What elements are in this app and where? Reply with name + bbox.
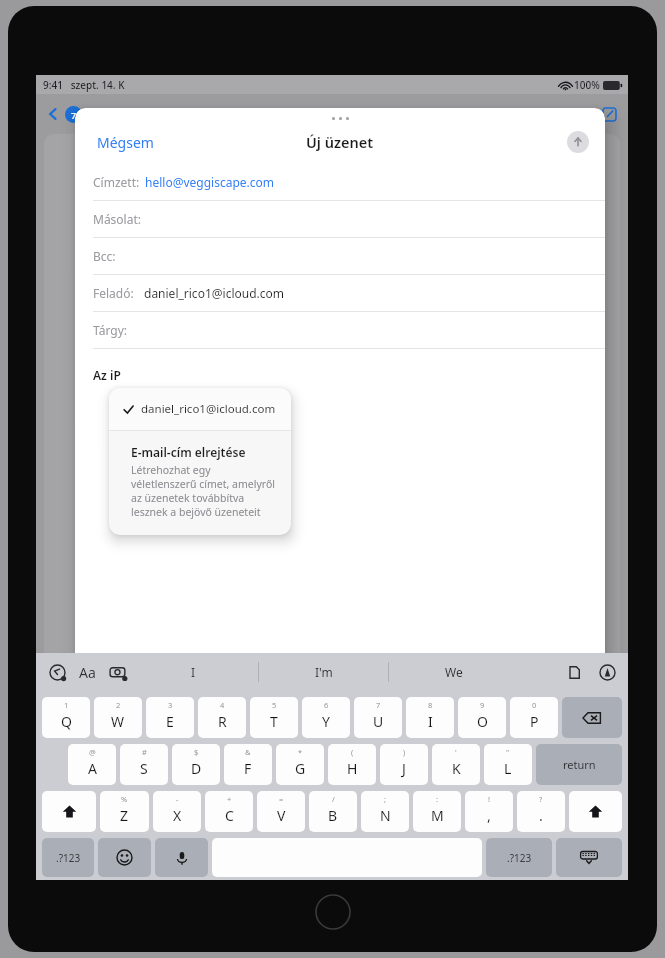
button[interactable]: = [257,791,305,832]
button[interactable]: ( [328,744,376,785]
staticText: @ [89,747,96,757]
button[interactable]: Kamera [107,661,129,683]
staticText: daniel_rico1@icloud.com [144,285,285,301]
button[interactable]: 2 [94,697,142,738]
button[interactable]: % [100,791,149,832]
staticText: Q [61,712,72,731]
button[interactable]: daniel_rico1@icloud.com [109,388,291,430]
staticText: + [227,794,232,804]
staticText: Aa [79,663,96,682]
staticText: Másolat: [93,211,142,227]
staticText: ' [455,747,457,757]
staticText: H [347,759,358,778]
button[interactable]: $ [172,744,220,785]
button[interactable]: Visszavonás [46,661,68,683]
staticText: I'm [315,664,333,680]
button[interactable]: 6 [302,697,350,738]
button[interactable]: Aa [79,663,96,682]
staticText: 9:41 szept. 14. K [43,78,125,92]
button[interactable]: 7 [354,697,402,738]
button[interactable]: 3 [146,697,194,738]
button[interactable]: / [309,791,357,832]
button[interactable]: Címzett: [75,164,605,201]
button[interactable]: 5 [250,697,298,738]
button[interactable]: Küldés [567,131,589,153]
staticText: We [445,664,463,680]
staticText: Címzett: [93,174,140,190]
button[interactable]: Dokumentum [563,661,585,683]
staticText: , [487,806,491,825]
staticText: E-mail-cím elrejtése [131,444,246,460]
staticText: Feladó: [93,285,134,301]
staticText: : [436,794,439,804]
button[interactable]: We [389,653,518,691]
staticText: # [142,747,147,757]
button[interactable]: ) [380,744,428,785]
button[interactable]: ' [432,744,480,785]
button[interactable]: * [276,744,324,785]
button[interactable]: + [205,791,253,832]
button[interactable]: & [224,744,272,785]
staticText: M [431,806,444,825]
button[interactable]: .?123 [486,838,552,877]
button[interactable]: Shift [569,791,622,832]
staticText: ; [384,794,387,804]
button[interactable]: " [484,744,532,785]
staticText: = [279,794,284,804]
staticText: daniel_rico1@icloud.com [141,401,276,417]
staticText: 8 [428,700,433,710]
staticText: A [88,759,97,778]
staticText: ) [403,747,406,757]
staticText: E [166,712,174,731]
staticText: " [506,747,510,757]
staticText: N [380,806,391,825]
staticText: 0 [532,700,537,710]
staticText: .?123 [56,851,81,865]
button[interactable]: I [129,653,258,691]
staticText: Y [322,712,330,731]
staticText: 6 [324,700,329,710]
button[interactable]: - [153,791,201,832]
button[interactable]: 1 [42,697,90,738]
button[interactable]: @ [68,744,116,785]
staticText: J [402,759,406,778]
button[interactable]: ? [517,791,565,832]
button[interactable]: 0 [510,697,558,738]
staticText: Bcc: [93,248,116,264]
button[interactable]: return [536,744,622,785]
button[interactable]: Bcc: [75,238,605,275]
button[interactable]: Diktálás [155,838,208,877]
button[interactable]: Feladó: [75,275,605,312]
button[interactable]: Törlés [562,697,622,738]
staticText: - [176,794,179,804]
staticText: ? [539,794,543,804]
button[interactable]: I'm [259,653,388,691]
button[interactable]: # [120,744,168,785]
button[interactable]: ! [465,791,513,832]
button[interactable]: Shift [42,791,96,832]
button[interactable]: Billentyűzet elrejtése [556,838,622,877]
button[interactable]: 9 [458,697,506,738]
button[interactable]: ; [361,791,409,832]
button[interactable]: 4 [198,697,246,738]
button[interactable]: Tárgy: [75,312,605,349]
button[interactable]: .?123 [42,838,94,877]
staticText: * [298,747,303,757]
staticText: 7 [376,700,381,710]
staticText: L [504,759,512,778]
button[interactable]: E-mail-cím elrejtése [109,431,291,535]
staticText: 7 [71,109,77,121]
staticText: U [373,712,384,731]
button[interactable]: Másolat: [75,201,605,238]
staticText: I [191,664,196,680]
staticText: ( [351,747,354,757]
button[interactable]: Rajz [596,661,618,683]
button[interactable]: Emodzsi [98,838,151,877]
staticText: D [191,759,202,778]
staticText: Tárgy: [93,322,127,338]
button[interactable]: : [413,791,461,832]
button[interactable]: Mégsem [93,129,158,156]
button[interactable]: 8 [406,697,454,738]
staticText: 3 [168,700,173,710]
